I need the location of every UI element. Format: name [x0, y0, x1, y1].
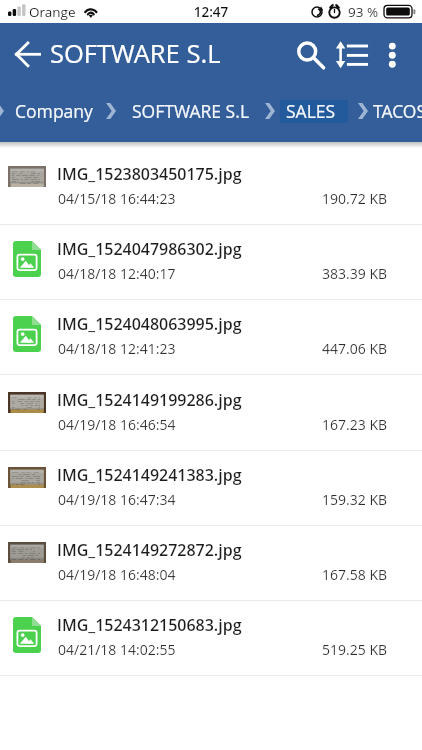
- staticText: 93 %: [348, 3, 379, 21]
- button[interactable]: TACOS: [367, 98, 422, 124]
- staticText: 190.72 KB: [322, 189, 388, 208]
- button[interactable]: IMG_1524047986302.jpg: [0, 225, 422, 300]
- staticText: IMG_1524149241383.jpg: [57, 464, 242, 486]
- staticText: 04/18/18 12:41:23: [58, 339, 176, 358]
- button[interactable]: IMG_1524149241383.jpg: [0, 451, 422, 526]
- button[interactable]: SOFTWARE S.L: [126, 98, 255, 124]
- staticText: 167.23 KB: [322, 415, 388, 434]
- button[interactable]: IMG_1524149199286.jpg: [0, 376, 422, 451]
- button[interactable]: Navigate up: [5, 32, 49, 76]
- button[interactable]: IMG_1524048063995.jpg: [0, 300, 422, 375]
- staticText: Company: [15, 99, 93, 123]
- staticText: IMG_1524312150683.jpg: [57, 614, 242, 636]
- staticText: SALES: [286, 99, 336, 123]
- staticText: 04/21/18 14:02:55: [58, 640, 176, 659]
- staticText: SOFTWARE S.L: [132, 99, 249, 123]
- staticText: TACOS: [373, 99, 422, 123]
- button[interactable]: Company: [9, 98, 99, 124]
- staticText: 04/19/18 16:48:04: [58, 565, 176, 584]
- staticText: IMG_1524149199286.jpg: [57, 389, 242, 411]
- staticText: IMG_1524149272872.jpg: [57, 539, 242, 561]
- button[interactable]: More options: [374, 39, 412, 77]
- staticText: 447.06 KB: [322, 339, 388, 358]
- staticText: 159.32 KB: [322, 490, 388, 509]
- staticText: 04/19/18 16:46:54: [58, 415, 176, 434]
- staticText: 383.39 KB: [322, 264, 388, 283]
- button[interactable]: IMG_1523803450175.jpg: [0, 150, 422, 225]
- button[interactable]: IMG_1524312150683.jpg: [0, 601, 422, 676]
- staticText: 519.25 KB: [322, 640, 388, 659]
- staticText: IMG_1524047986302.jpg: [57, 238, 242, 260]
- staticText: 12:47: [0, 3, 422, 21]
- staticText: 04/18/18 12:40:17: [58, 264, 176, 283]
- staticText: 04/15/18 16:44:23: [58, 189, 176, 208]
- staticText: 04/19/18 16:47:34: [58, 490, 176, 509]
- button[interactable]: SALES: [280, 98, 342, 124]
- button[interactable]: IMG_1524149272872.jpg: [0, 526, 422, 601]
- staticText: Orange: [29, 3, 76, 21]
- staticText: IMG_1523803450175.jpg: [57, 163, 242, 185]
- button[interactable]: Search: [286, 32, 330, 76]
- staticText: 167.58 KB: [322, 565, 388, 584]
- staticText: SOFTWARE S.L: [50, 36, 221, 71]
- button[interactable]: Sort: [332, 32, 376, 76]
- staticText: IMG_1524048063995.jpg: [57, 313, 242, 335]
